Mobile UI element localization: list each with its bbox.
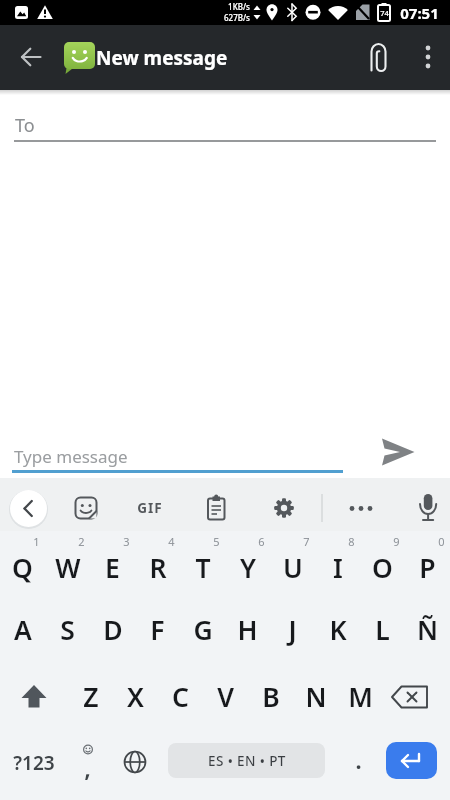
button[interactable]: O	[360, 546, 405, 590]
button[interactable]: H	[225, 608, 270, 652]
button[interactable]: T	[180, 546, 225, 590]
button[interactable]	[408, 486, 448, 526]
button[interactable]: K	[315, 608, 360, 652]
button[interactable]: Y	[225, 546, 270, 590]
staticText: 8	[348, 534, 355, 548]
staticText: 9	[393, 534, 400, 548]
staticText: G	[193, 612, 213, 648]
staticText: To	[15, 113, 35, 138]
staticText: 7	[303, 534, 310, 548]
staticText: 3	[123, 534, 130, 548]
button[interactable]: Ñ	[405, 608, 450, 652]
staticText: O	[372, 550, 393, 586]
staticText: H	[237, 612, 258, 648]
button[interactable]: Q	[0, 546, 45, 590]
button[interactable]	[356, 34, 400, 80]
staticText: C	[172, 679, 189, 715]
staticText: L	[375, 612, 390, 648]
staticText: J	[288, 612, 297, 648]
staticText: F	[150, 612, 165, 648]
button[interactable]: A	[0, 608, 45, 652]
button[interactable]: W	[45, 546, 90, 590]
staticText: S	[60, 612, 75, 648]
staticText: N	[305, 679, 327, 715]
button[interactable]: U	[270, 546, 315, 590]
button[interactable]	[406, 34, 450, 80]
button[interactable]: Type message	[0, 435, 370, 478]
staticText: 74	[380, 8, 389, 18]
staticText: 2	[78, 534, 85, 548]
staticText: 1KB/s	[228, 1, 250, 12]
staticText: ES • EN • PT	[208, 752, 286, 770]
staticText: 4	[168, 534, 175, 548]
button[interactable]: To	[0, 95, 450, 150]
button[interactable]	[341, 486, 381, 526]
button[interactable]: B	[248, 675, 293, 719]
button[interactable]: S	[45, 608, 90, 652]
button[interactable]: ES • EN • PT	[168, 743, 325, 778]
button[interactable]: L	[360, 608, 405, 652]
staticText: .	[355, 743, 362, 776]
button[interactable]	[264, 486, 304, 526]
button[interactable]: Z	[68, 675, 113, 719]
staticText: W	[55, 550, 81, 586]
button[interactable]	[372, 430, 424, 474]
staticText: E	[105, 550, 120, 586]
button[interactable]: G	[180, 608, 225, 652]
staticText: ,	[84, 751, 91, 781]
button[interactable]: N	[293, 675, 338, 719]
staticText: M	[348, 679, 373, 715]
button[interactable]: R	[135, 546, 180, 590]
staticText: New message	[96, 45, 228, 71]
button[interactable]: D	[90, 608, 135, 652]
button[interactable]	[115, 742, 155, 786]
staticText: 07:51	[400, 3, 439, 22]
staticText: P	[419, 550, 436, 586]
staticText: Ñ	[417, 612, 438, 648]
staticText: Y	[240, 550, 256, 586]
button[interactable]: P	[405, 546, 450, 590]
staticText: 1	[33, 534, 40, 548]
staticText: R	[149, 550, 167, 586]
staticText: 6	[258, 534, 265, 548]
button[interactable]: ?123	[8, 747, 60, 779]
button[interactable]	[130, 486, 170, 526]
staticText: Z	[83, 679, 99, 715]
button[interactable]: X	[113, 675, 158, 719]
button[interactable]: ,	[68, 742, 108, 786]
button[interactable]: C	[158, 675, 203, 719]
button[interactable]: I	[315, 546, 360, 590]
staticText: U	[283, 550, 303, 586]
button[interactable]	[66, 486, 106, 526]
staticText: D	[103, 612, 123, 648]
staticText: 5	[213, 534, 220, 548]
button[interactable]	[386, 742, 437, 779]
staticText: K	[329, 612, 347, 648]
staticText: B	[262, 679, 280, 715]
button[interactable]: F	[135, 608, 180, 652]
staticText: ?123	[13, 750, 55, 776]
staticText: I	[333, 550, 343, 586]
staticText: Type message	[14, 445, 128, 468]
staticText: V	[217, 679, 234, 715]
button[interactable]	[10, 490, 47, 527]
staticText: A	[14, 612, 32, 648]
staticText: Q	[12, 550, 33, 586]
button[interactable]	[196, 486, 236, 526]
button[interactable]	[10, 675, 58, 719]
staticText: 627B/s	[224, 12, 250, 23]
button[interactable]: .	[344, 742, 372, 776]
button[interactable]: V	[203, 675, 248, 719]
staticText: X	[127, 679, 144, 715]
button[interactable]: M	[338, 675, 383, 719]
button[interactable]	[389, 675, 437, 719]
button[interactable]: E	[90, 546, 135, 590]
button[interactable]	[8, 34, 54, 80]
staticText: GIF	[137, 499, 163, 517]
staticText: 0	[438, 534, 445, 548]
button[interactable]: J	[270, 608, 315, 652]
staticText: T	[195, 550, 211, 586]
